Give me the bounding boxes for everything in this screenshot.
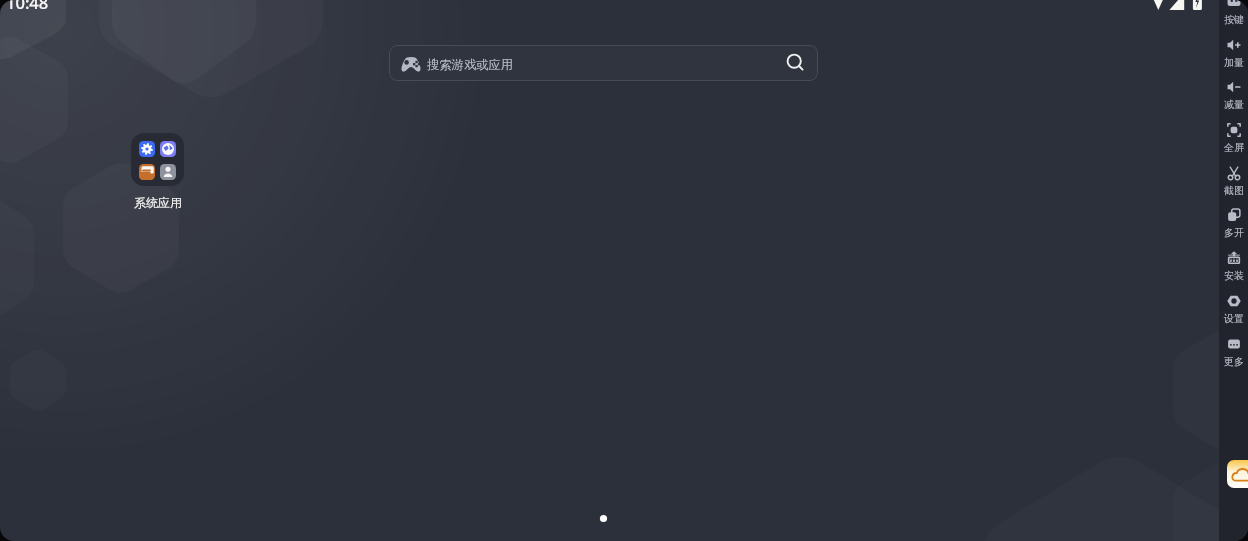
staticText: 10:48 (6, 0, 49, 13)
staticText: 全屏 (1224, 141, 1244, 154)
staticText: 加量 (1224, 56, 1244, 69)
button[interactable]: 加量 (1219, 32, 1248, 74)
staticText: 更多 (1224, 355, 1244, 368)
button[interactable]: 按键 (1219, 0, 1248, 31)
button[interactable]: Cloud game (1227, 460, 1248, 488)
button[interactable]: 系统应用 (117, 133, 198, 210)
staticText: 减量 (1224, 98, 1244, 111)
button[interactable]: 截图 (1219, 160, 1248, 202)
button[interactable]: 安装 (1219, 245, 1248, 287)
staticText: 截图 (1224, 184, 1244, 197)
staticText: 按键 (1224, 13, 1244, 26)
staticText: 设置 (1224, 312, 1244, 325)
button[interactable]: 全屏 (1219, 117, 1248, 159)
button[interactable]: 更多 (1219, 331, 1248, 373)
staticText: 安装 (1224, 269, 1244, 282)
button[interactable]: 减量 (1219, 74, 1248, 116)
staticText: 多开 (1224, 226, 1244, 239)
button[interactable]: 多开 (1219, 202, 1248, 244)
button[interactable]: 设置 (1219, 288, 1248, 330)
staticText: 系统应用 (134, 195, 182, 210)
button[interactable]: 搜索游戏或应用 (389, 45, 818, 81)
staticText: 搜索游戏或应用 (427, 57, 514, 72)
